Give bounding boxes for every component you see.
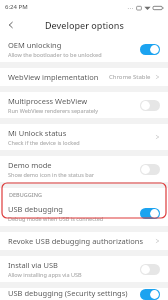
button[interactable]: USB debugging (Security settings) [0,288,168,300]
button[interactable]: USB debugging [0,200,168,226]
staticText: Mi Unlock status [8,128,67,138]
staticText: Show demo icon in the status bar [8,171,95,178]
staticText: USB debugging (Security settings) [8,288,128,298]
staticText: Debug mode when USB is connected [8,215,104,222]
button[interactable]: Multiprocess WebView [0,92,168,118]
button[interactable]: Mi Unlock status [0,124,168,150]
staticText: DEBUGGING [9,191,42,198]
staticText: Check if the device is locked [8,139,80,146]
staticText: USB debugging [8,204,63,214]
button[interactable]: OEM unlocking [0,36,168,62]
button[interactable]: Demo mode [0,156,168,182]
button[interactable]: Revoke USB debugging authorizations [0,232,168,250]
staticText: Allow installing apps via USB [8,271,82,278]
staticText: Multiprocess WebView [8,96,88,106]
staticText: Allow the bootloader to be unlocked [8,51,102,58]
staticText: OEM unlocking [8,40,62,50]
staticText: Chrome Stable [109,73,151,81]
staticText: Demo mode [8,160,52,170]
staticText: Run WebView renderers separately [8,107,99,114]
staticText: Install via USB [8,260,58,270]
button[interactable]: Back [0,14,22,36]
staticText: Developer options [45,19,124,31]
staticText: WebView implementation [8,72,99,82]
button[interactable]: Install via USB [0,256,168,282]
staticText: 6:24 PM [5,3,28,11]
button[interactable]: WebView implementation [0,68,168,86]
staticText: Revoke USB debugging authorizations [8,236,144,246]
